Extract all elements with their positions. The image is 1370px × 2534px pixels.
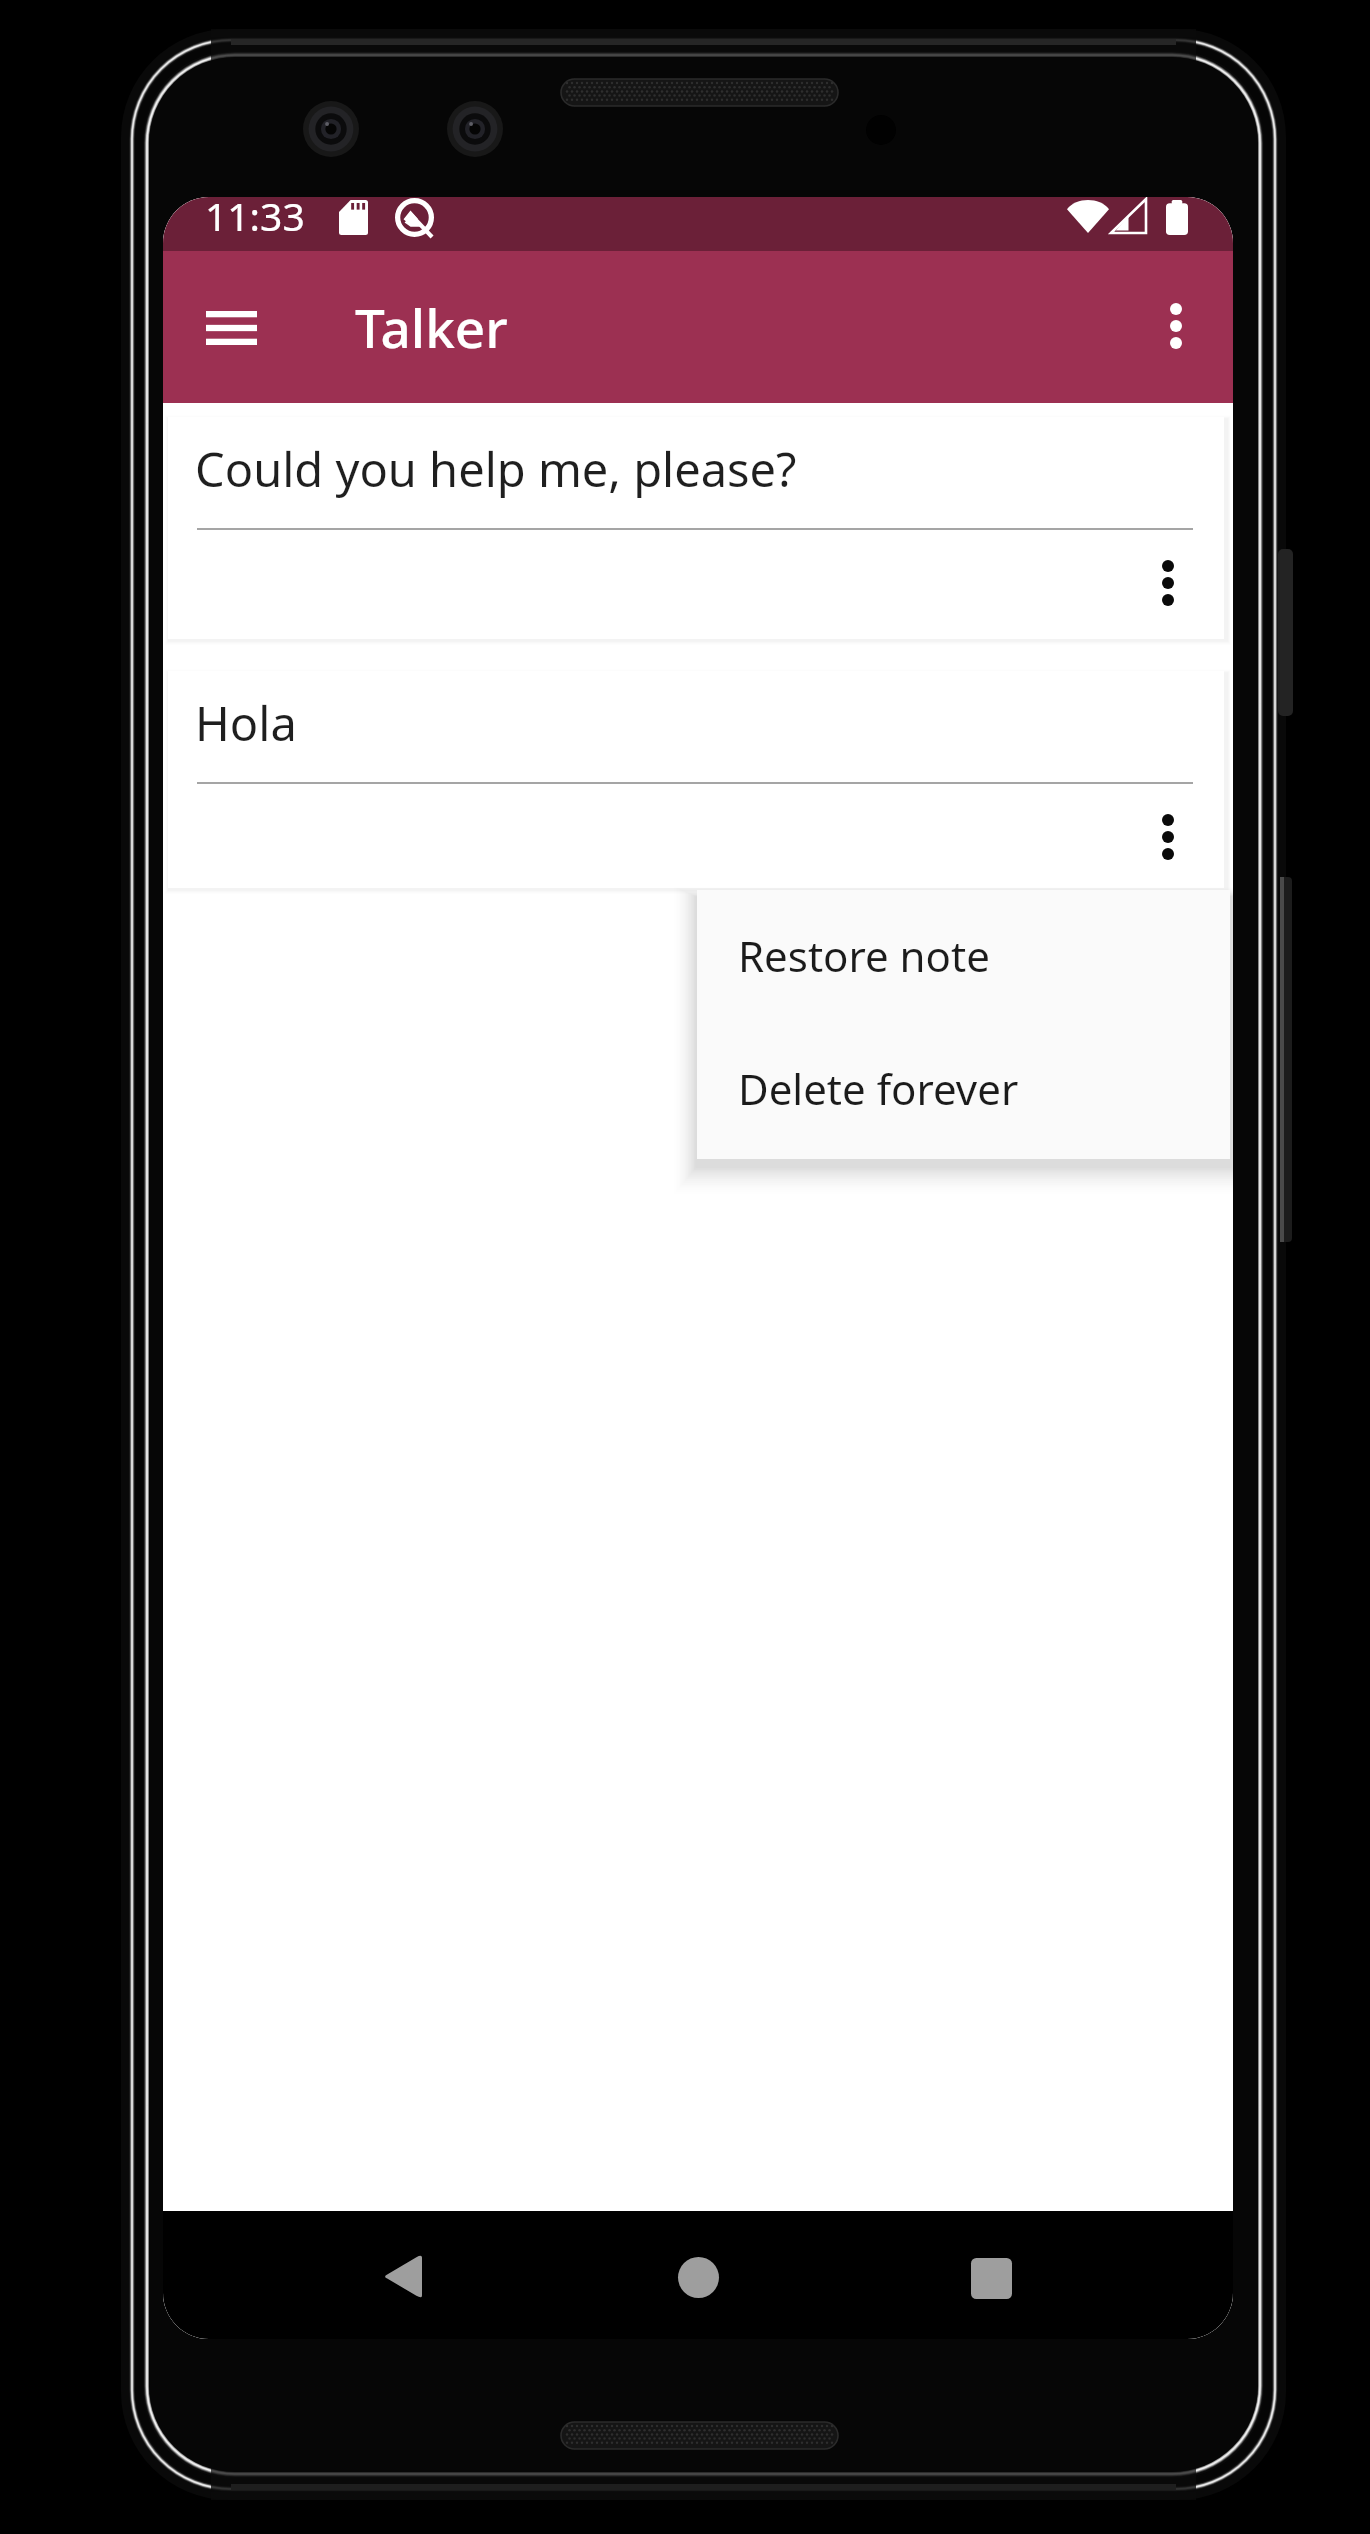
staticText: Talker (355, 291, 508, 363)
button[interactable]: Note options (1123, 538, 1213, 628)
staticText: Restore note (738, 927, 990, 984)
staticText: Hola (195, 691, 297, 755)
staticText: Could you help me, please? (195, 437, 797, 501)
button[interactable]: Back (334, 2212, 470, 2339)
staticText: Delete forever (738, 1060, 1019, 1117)
button[interactable]: Home (630, 2213, 766, 2339)
button[interactable]: Note options (1123, 792, 1213, 882)
button[interactable]: Open navigation drawer (183, 280, 279, 376)
button[interactable]: Recent apps (923, 2214, 1059, 2339)
button[interactable]: Delete forever (697, 1036, 1230, 1140)
button[interactable]: Could you help me, please? (168, 417, 1224, 639)
staticText: 11:33 (205, 197, 305, 242)
button[interactable]: Hola (168, 671, 1224, 888)
button[interactable]: Restore note (697, 903, 1230, 1007)
button[interactable]: More options (1128, 278, 1224, 374)
